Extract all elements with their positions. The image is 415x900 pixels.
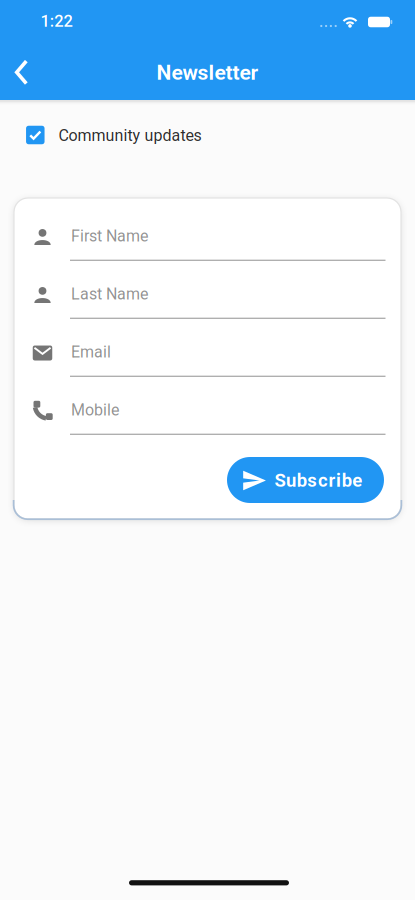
staticText: 1:22 xyxy=(41,11,72,31)
staticText: Community updates xyxy=(58,126,201,145)
button[interactable]: Email xyxy=(14,327,385,377)
staticText: Newsletter xyxy=(156,60,258,85)
button[interactable]: Community updates xyxy=(10,115,250,155)
button[interactable] xyxy=(0,50,43,94)
button[interactable]: Subscribe xyxy=(227,457,384,503)
staticText: Email xyxy=(71,343,111,361)
staticText: Last Name xyxy=(71,285,148,303)
button[interactable]: Mobile xyxy=(14,385,385,435)
button[interactable]: Last Name xyxy=(14,269,385,319)
staticText: First Name xyxy=(71,227,148,245)
staticText: Mobile xyxy=(71,401,119,419)
button[interactable]: First Name xyxy=(14,211,385,261)
staticText: Subscribe xyxy=(274,470,362,491)
